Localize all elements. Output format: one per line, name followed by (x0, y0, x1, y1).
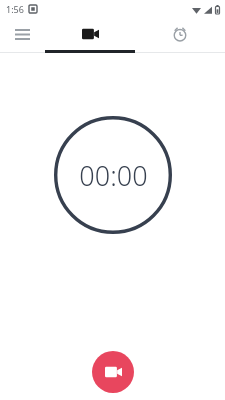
button[interactable]: Menu (0, 18, 45, 50)
button[interactable]: Recorder (45, 18, 135, 50)
button[interactable]: Scheduled recordings (135, 18, 225, 50)
staticText: 1:56 (6, 3, 24, 15)
button[interactable]: Start recording (92, 351, 134, 393)
staticText: 00:00 (79, 157, 148, 194)
